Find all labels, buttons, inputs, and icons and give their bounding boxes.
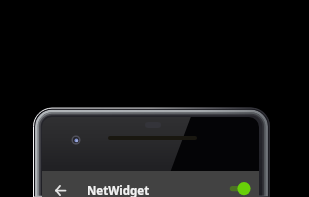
button[interactable]: Enable NetWidget bbox=[227, 171, 257, 197]
staticText: NetWidget bbox=[87, 183, 150, 197]
button[interactable]: Back bbox=[54, 184, 67, 197]
